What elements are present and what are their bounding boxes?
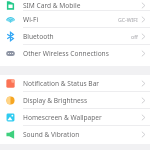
staticText: Homescreen & Wallpaper (23, 113, 141, 122)
staticText: off (131, 33, 138, 40)
button[interactable]: Display & Brightness (0, 92, 150, 109)
button[interactable]: Bluetooth (0, 28, 150, 45)
staticText: Wi-Fi (23, 15, 118, 24)
staticText: SIM Card & Mobile (23, 1, 141, 10)
staticText: Other Wireless Connections (23, 49, 141, 58)
button[interactable]: Sound & Vibration (0, 126, 150, 143)
button[interactable]: Other Wireless Connections (0, 45, 150, 62)
staticText: GC-WIFI (118, 16, 138, 23)
button[interactable]: SIM Card & Mobile (0, 0, 150, 11)
staticText: Display & Brightness (23, 96, 141, 105)
staticText: Notification & Status Bar (23, 79, 141, 88)
staticText: Sound & Vibration (23, 130, 141, 139)
button[interactable]: Wi-Fi (0, 11, 150, 28)
staticText: Bluetooth (23, 32, 131, 41)
button[interactable]: Homescreen & Wallpaper (0, 109, 150, 126)
button[interactable]: Notification & Status Bar (0, 75, 150, 92)
